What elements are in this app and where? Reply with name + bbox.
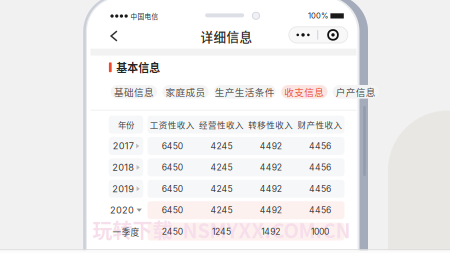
staticText: 4456 xyxy=(309,162,331,173)
staticText: 2020 xyxy=(110,205,134,216)
staticText: 1000 xyxy=(311,226,329,237)
staticText: 财产性收入 xyxy=(297,118,342,131)
staticText: 4492 xyxy=(260,162,282,173)
staticText: 户产信息 xyxy=(336,85,376,99)
button[interactable]: More xyxy=(289,27,317,43)
staticText: 工资性收入 xyxy=(150,118,195,131)
staticText: 2018 xyxy=(112,162,134,173)
staticText: 年份 xyxy=(118,118,134,131)
staticText: 4245 xyxy=(210,162,232,173)
staticText: 基础信息 xyxy=(114,85,154,99)
staticText: 4245 xyxy=(210,184,232,194)
staticText: 家庭成员 xyxy=(165,85,205,99)
staticText: 4456 xyxy=(309,205,331,215)
staticText: 6450 xyxy=(162,141,183,151)
staticText: 玩转下载 NSMYXX.COM.CN xyxy=(92,215,350,244)
staticText: 4245 xyxy=(210,205,232,215)
button[interactable]: Close mini program xyxy=(318,27,348,43)
staticText: 一季度 xyxy=(112,225,139,238)
staticText: 6450 xyxy=(162,205,183,215)
staticText: 2019 xyxy=(112,183,134,194)
staticText: 1492 xyxy=(261,226,280,237)
staticText: 2017 xyxy=(113,140,134,151)
staticText: 2450 xyxy=(162,226,183,237)
staticText: 100% xyxy=(308,11,328,20)
staticText: 6450 xyxy=(162,162,183,173)
staticText: 4492 xyxy=(260,184,282,194)
staticText: 收支信息 xyxy=(284,85,324,99)
staticText: 6450 xyxy=(162,184,183,194)
staticText: 基本信息 xyxy=(116,59,160,75)
staticText: 经营性收入 xyxy=(199,118,244,131)
staticText: 详细信息 xyxy=(200,27,252,45)
staticText: 4245 xyxy=(210,141,232,151)
staticText: 转移性收入 xyxy=(248,118,293,131)
staticText: 4492 xyxy=(260,141,282,151)
staticText: 4456 xyxy=(309,141,331,151)
staticText: 中国电信 xyxy=(131,11,159,21)
staticText: 4456 xyxy=(309,184,331,194)
staticText: 1245 xyxy=(212,226,231,237)
staticText: 4492 xyxy=(260,205,282,215)
staticText: 生产生活条件 xyxy=(215,85,275,99)
